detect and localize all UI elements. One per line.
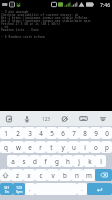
- staticText: h: [66, 157, 70, 166]
- button[interactable]: d: [29, 155, 40, 167]
- button[interactable]: ,: [25, 183, 35, 195]
- button[interactable]: 2: [12, 127, 24, 139]
- button[interactable]: s: [18, 155, 29, 167]
- staticText: !#1: [4, 185, 10, 190]
- button[interactable]: Stickers: [55, 111, 74, 126]
- staticText: c: [39, 171, 43, 180]
- button[interactable]: 9: [90, 127, 101, 139]
- button[interactable]: v: [47, 169, 59, 181]
- staticText: 5: [50, 129, 54, 138]
- button[interactable]: 0: [101, 127, 112, 139]
- staticText: i: [84, 143, 86, 152]
- button[interactable]: i: [79, 141, 90, 153]
- staticText: Reading lists... Done: [1, 28, 39, 31]
- button[interactable]: [35, 183, 77, 195]
- staticText: d: [33, 157, 37, 166]
- staticText: .: [81, 186, 83, 193]
- staticText: Get:2 https://packages.termux.org stable…: [1, 19, 92, 22]
- staticText: b: [63, 171, 67, 180]
- staticText: n: [75, 171, 79, 180]
- button[interactable]: Clipboard: [0, 111, 18, 126]
- staticText: ,: [29, 186, 31, 193]
- button[interactable]: n: [71, 169, 83, 181]
- staticText: e: [28, 143, 32, 152]
- button[interactable]: b: [59, 169, 71, 181]
- staticText: o: [94, 143, 98, 152]
- staticText: Checking availability of current mirror:…: [1, 13, 79, 16]
- button[interactable]: Backspace: [95, 169, 112, 181]
- button[interactable]: Shift: [0, 169, 11, 181]
- button[interactable]: e: [24, 141, 35, 153]
- staticText: 3: [28, 129, 32, 138]
- staticText: 4: [39, 129, 43, 138]
- button[interactable]: t: [46, 141, 57, 153]
- button[interactable]: m: [83, 169, 95, 181]
- staticText: $ pkg upgrade: [5, 10, 29, 13]
- staticText: q: [4, 143, 8, 152]
- button[interactable]: l: [95, 155, 106, 167]
- button[interactable]: k: [84, 155, 95, 167]
- button[interactable]: a: [7, 155, 18, 167]
- button[interactable]: c: [35, 169, 47, 181]
- button[interactable]: .: [77, 183, 87, 195]
- staticText: 8: [83, 129, 87, 138]
- button[interactable]: 5: [46, 127, 57, 139]
- staticText: 6: [61, 129, 65, 138]
- staticText: 123: [42, 116, 50, 122]
- staticText: l: [100, 157, 102, 166]
- staticText: Fetched 27.5 kB in 1s (30.1 kB/s): [1, 22, 61, 25]
- staticText: $ Reading state inform: [5, 35, 45, 38]
- button[interactable]: g: [51, 155, 62, 167]
- button[interactable]: f: [40, 155, 51, 167]
- staticText: s: [22, 157, 26, 166]
- button[interactable]: Language: [13, 183, 25, 195]
- button[interactable]: w: [12, 141, 24, 153]
- staticText: 7: [72, 129, 76, 138]
- button[interactable]: q: [0, 141, 12, 153]
- button[interactable]: 3: [24, 127, 35, 139]
- staticText: g: [55, 157, 59, 166]
- button[interactable]: h: [62, 155, 73, 167]
- button[interactable]: r: [35, 141, 46, 153]
- button[interactable]: o: [90, 141, 101, 153]
- button[interactable]: Voice input: [18, 111, 36, 126]
- button[interactable]: z: [11, 169, 23, 181]
- staticText: ~: [1, 10, 5, 13]
- button[interactable]: u: [68, 141, 79, 153]
- staticText: j: [78, 157, 80, 166]
- staticText: 1: [4, 129, 8, 138]
- button[interactable]: j: [73, 155, 84, 167]
- button[interactable]: More options: [93, 111, 112, 126]
- button[interactable]: 7: [68, 127, 79, 139]
- staticText: 7:46: [100, 1, 111, 8]
- staticText: m: [86, 171, 92, 180]
- button[interactable]: p: [101, 141, 112, 153]
- staticText: a: [11, 157, 15, 166]
- button[interactable]: Enter: [87, 183, 112, 195]
- staticText: Hit:1 https://packages.termux.org stable…: [1, 16, 88, 19]
- staticText: 0: [105, 129, 109, 138]
- button[interactable]: x: [23, 169, 35, 181]
- staticText: z: [16, 171, 19, 180]
- button[interactable]: y: [57, 141, 68, 153]
- button[interactable]: 4: [35, 127, 46, 139]
- button[interactable]: Symbols: [0, 183, 13, 195]
- staticText: t: [50, 143, 53, 152]
- button[interactable]: Keyboard layout: [74, 111, 93, 126]
- staticText: x: [27, 171, 31, 180]
- button[interactable]: 8: [79, 127, 90, 139]
- button[interactable]: 1: [0, 127, 12, 139]
- staticText: - ok: [1, 25, 9, 28]
- staticText: u: [72, 143, 76, 152]
- staticText: 9: [94, 129, 98, 138]
- staticText: Sym: [16, 190, 23, 194]
- staticText: k: [88, 157, 92, 166]
- staticText: r: [39, 143, 42, 152]
- staticText: p: [105, 143, 109, 152]
- staticText: 2: [16, 129, 20, 138]
- staticText: En: [5, 190, 9, 194]
- staticText: ~: [1, 35, 5, 38]
- button[interactable]: 6: [57, 127, 68, 139]
- button[interactable]: Numbers: [36, 111, 55, 126]
- staticText: v: [51, 171, 55, 180]
